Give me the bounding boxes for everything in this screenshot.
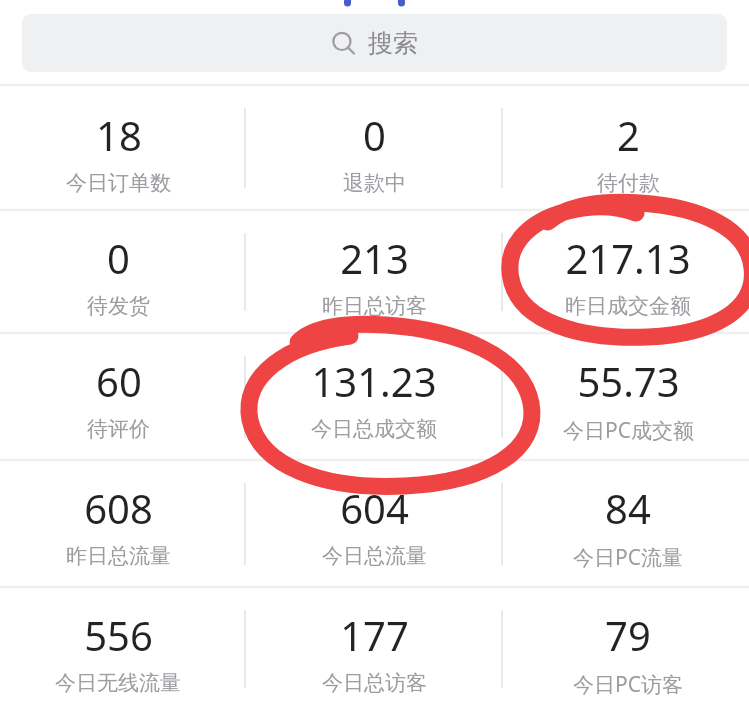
staticText: 待评价: [87, 416, 150, 442]
staticText: 0: [363, 108, 386, 162]
button[interactable]: 0: [250, 86, 498, 210]
staticText: 昨日成交金额: [565, 293, 691, 319]
staticText: 搜索: [368, 28, 418, 59]
staticText: 待付款: [597, 170, 660, 196]
staticText: 604: [340, 481, 409, 535]
staticText: 18: [96, 108, 142, 162]
staticText: 今日总流量: [322, 543, 427, 569]
staticText: 昨日总访客: [322, 293, 427, 319]
staticText: 今日无线流量: [55, 670, 181, 696]
button[interactable]: 177: [250, 588, 498, 710]
button[interactable]: 213: [250, 211, 498, 333]
staticText: 84: [605, 481, 651, 535]
staticText: 今日总访客: [322, 670, 427, 696]
staticText: 待发货: [87, 293, 150, 319]
button[interactable]: 18: [0, 86, 242, 210]
staticText: 177: [340, 608, 409, 662]
button[interactable]: 2: [504, 86, 749, 210]
button[interactable]: 84: [504, 461, 749, 587]
staticText: 今日订单数: [66, 170, 171, 196]
staticText: 2: [617, 108, 640, 162]
button[interactable]: 搜索: [22, 14, 727, 72]
staticText: 退款中: [343, 170, 406, 196]
staticText: 0: [107, 231, 130, 285]
button[interactable]: 604: [250, 461, 498, 587]
button[interactable]: 79: [504, 588, 749, 710]
button[interactable]: 55.73: [504, 334, 749, 460]
staticText: 556: [84, 608, 153, 662]
staticText: 55.73: [577, 354, 680, 408]
staticText: 608: [84, 481, 153, 535]
staticText: 79: [605, 608, 651, 662]
button[interactable]: 556: [0, 588, 242, 710]
staticText: 今日PC成交额: [563, 416, 694, 445]
staticText: 今日总成交额: [311, 416, 437, 442]
staticText: 今日PC访客: [573, 670, 683, 699]
button[interactable]: 217.13: [504, 211, 749, 333]
button[interactable]: 608: [0, 461, 242, 587]
staticText: 217.13: [565, 231, 691, 285]
staticText: 今日PC流量: [573, 543, 683, 572]
button[interactable]: 60: [0, 334, 242, 460]
staticText: 昨日总流量: [66, 543, 171, 569]
staticText: 213: [340, 231, 409, 285]
button[interactable]: 131.23: [250, 334, 498, 460]
staticText: 60: [96, 354, 142, 408]
staticText: 131.23: [311, 354, 437, 408]
button[interactable]: 0: [0, 211, 242, 333]
